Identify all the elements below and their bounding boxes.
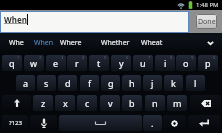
button[interactable]: x (55, 95, 75, 111)
button[interactable]: m (167, 95, 187, 111)
button[interactable]: f (80, 75, 99, 91)
staticText: s (44, 77, 49, 89)
staticText: 1:48 PM (196, 1, 219, 9)
button[interactable]: u (133, 55, 153, 71)
staticText: w (30, 57, 38, 69)
staticText: b (129, 97, 135, 109)
staticText: . (151, 117, 154, 129)
staticText: r (75, 57, 79, 69)
button[interactable]: a (16, 75, 35, 91)
button[interactable]: l (186, 75, 205, 91)
staticText: n (152, 97, 158, 109)
button[interactable]: r (67, 55, 87, 71)
staticText: 4 (82, 55, 85, 60)
button[interactable]: b (122, 95, 142, 111)
staticText: q (9, 57, 15, 69)
button[interactable]: q (2, 55, 22, 71)
button[interactable]: Settings (163, 115, 186, 131)
staticText: Wheat (141, 38, 163, 48)
staticText: i (164, 57, 167, 69)
button[interactable]: j (143, 75, 162, 91)
staticText: a (23, 77, 29, 89)
staticText: x (63, 97, 68, 109)
button[interactable]: z (33, 95, 53, 111)
button[interactable]: g (101, 75, 120, 91)
staticText: h (129, 77, 135, 89)
staticText: When (34, 38, 54, 48)
button[interactable]: Whether (101, 33, 130, 52)
button[interactable]: Enter (188, 115, 220, 131)
staticText: m (173, 97, 182, 109)
staticText: 7 (148, 55, 151, 60)
staticText: 6 (126, 55, 129, 60)
button[interactable]: i (155, 55, 175, 71)
staticText: l (194, 77, 197, 89)
button[interactable]: o (176, 55, 196, 71)
button[interactable]: v (100, 95, 120, 111)
button[interactable]: s (37, 75, 56, 91)
button[interactable]: When (0, 11, 189, 33)
button[interactable]: y (111, 55, 131, 71)
button[interactable]: k (164, 75, 183, 91)
staticText: 9 (191, 55, 194, 60)
button[interactable]: p (198, 55, 218, 71)
button[interactable]: w (24, 55, 44, 71)
staticText: 0 (213, 55, 216, 60)
button[interactable]: Backspace (190, 95, 221, 111)
button[interactable]: Where (60, 33, 82, 52)
button[interactable]: Whe (9, 33, 24, 52)
button[interactable]: e (46, 55, 66, 71)
staticText: 5 (104, 55, 107, 60)
button[interactable]: More suggestions (202, 33, 219, 52)
staticText: Where (60, 38, 82, 48)
staticText: z (41, 97, 46, 109)
button[interactable]: c (77, 95, 97, 111)
staticText: f (88, 77, 92, 89)
staticText: v (108, 97, 113, 109)
staticText: 1 (17, 55, 20, 60)
staticText: t (97, 57, 101, 69)
button[interactable]: d (58, 75, 77, 91)
staticText: When (4, 14, 27, 25)
staticText: Whether (101, 38, 130, 48)
button[interactable]: Voice input (30, 115, 57, 131)
staticText: j (151, 77, 154, 89)
staticText: 2 (39, 55, 42, 60)
staticText: y (119, 57, 124, 69)
button[interactable]: Wheat (141, 33, 163, 52)
staticText: g (108, 77, 114, 89)
button[interactable]: When (34, 33, 54, 52)
staticText: k (171, 77, 176, 89)
staticText: d (65, 77, 71, 89)
staticText: u (140, 57, 146, 69)
button[interactable]: . (143, 115, 162, 131)
staticText: Done (198, 17, 216, 27)
staticText: o (183, 57, 189, 69)
staticText: c (85, 97, 90, 109)
staticText: e (53, 57, 59, 69)
button[interactable]: t (89, 55, 109, 71)
button[interactable]: ?123 (2, 115, 28, 131)
staticText: 8 (170, 55, 173, 60)
button[interactable]: n (145, 95, 165, 111)
staticText: ?123 (9, 119, 22, 127)
button[interactable]: h (122, 75, 141, 91)
button[interactable]: Space (59, 115, 142, 131)
button[interactable]: Shift (2, 95, 31, 111)
staticText: 3 (61, 55, 64, 60)
staticText: p (205, 57, 211, 69)
staticText: Whe (9, 38, 24, 48)
button[interactable]: Done (196, 14, 217, 29)
